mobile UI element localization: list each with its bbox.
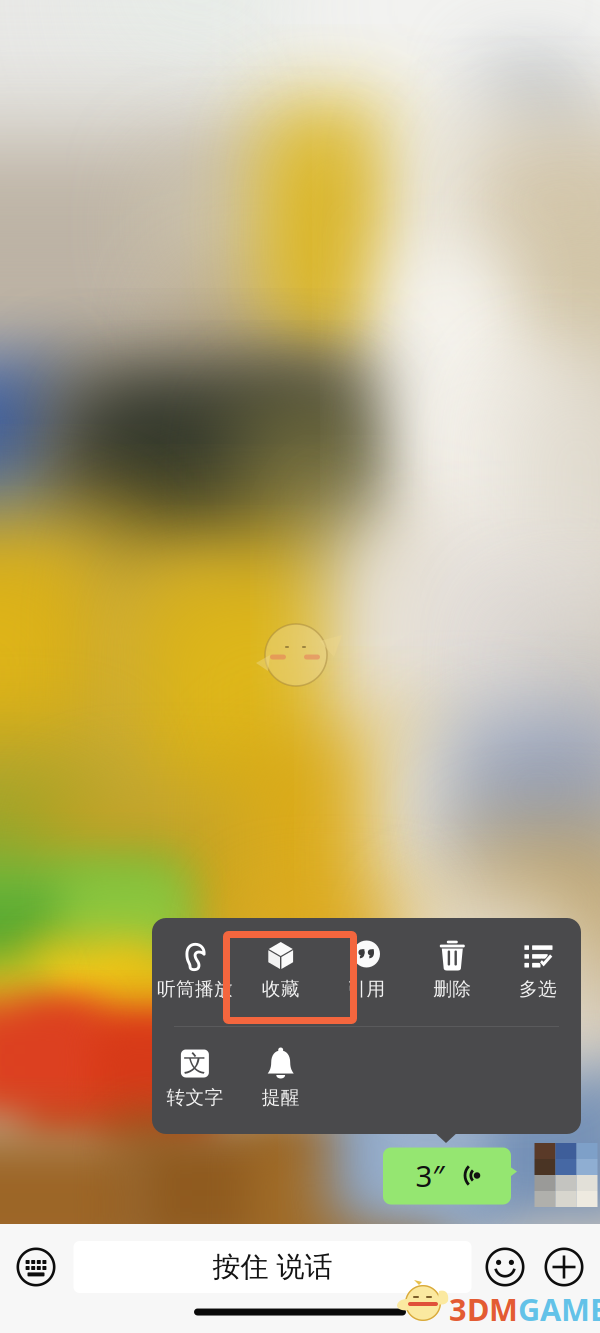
staticText: 听筒播放 [157,977,233,1000]
staticText: 按住 说话 [212,1250,332,1284]
staticText: 提醒 [262,1086,300,1109]
staticText: 收藏 [262,977,300,1000]
button[interactable]: 收藏 [238,918,324,1026]
staticText: 多选 [519,977,557,1000]
button[interactable]: Emoji [474,1228,536,1306]
button[interactable]: 按住 说话 [73,1241,471,1293]
button[interactable]: More [533,1228,595,1306]
button[interactable]: 听筒播放 [152,918,238,1026]
button[interactable]: 多选 [495,918,581,1026]
staticText: 转文字 [166,1086,223,1109]
staticText: 3″ [415,1156,444,1195]
staticText: 文 [183,1050,206,1077]
button[interactable]: 提醒 [238,1026,324,1134]
staticText: 引用 [347,977,385,1000]
staticText: 删除 [433,977,471,1000]
staticText: GAME [518,1289,600,1329]
staticText: 3DM [449,1289,518,1329]
button[interactable]: 引用 [324,918,409,1026]
button[interactable]: 文 [152,1026,238,1134]
button[interactable]: Keyboard [3,1228,69,1306]
button[interactable]: 删除 [409,918,495,1026]
